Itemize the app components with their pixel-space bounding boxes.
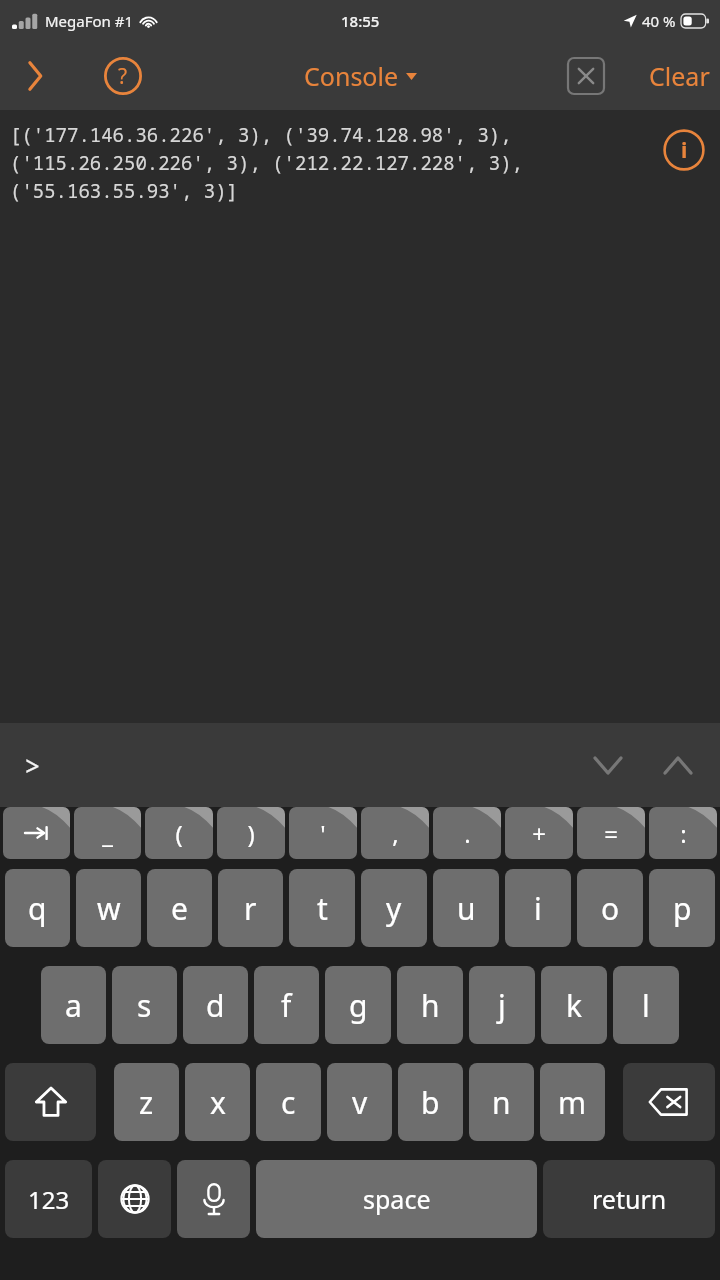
button[interactable]: k: [541, 966, 607, 1044]
button[interactable]: x: [185, 1063, 250, 1141]
button[interactable]: y: [361, 869, 427, 947]
button[interactable]: Dictation: [177, 1160, 250, 1238]
button[interactable]: v: [327, 1063, 392, 1141]
staticText: :: [680, 817, 687, 850]
button[interactable]: h: [397, 966, 463, 1044]
button[interactable]: p: [649, 869, 715, 947]
button[interactable]: w: [76, 869, 141, 947]
staticText: h: [421, 985, 440, 1026]
staticText: return: [592, 1182, 667, 1216]
button[interactable]: Change language: [98, 1160, 171, 1238]
button[interactable]: n: [469, 1063, 534, 1141]
button[interactable]: ): [217, 807, 285, 859]
staticText: d: [206, 985, 225, 1026]
staticText: x: [210, 1082, 226, 1123]
staticText: t: [317, 888, 328, 929]
button[interactable]: b: [398, 1063, 463, 1141]
staticText: w: [97, 888, 121, 929]
button[interactable]: space: [256, 1160, 537, 1238]
staticText: y: [386, 888, 402, 929]
button[interactable]: j: [469, 966, 535, 1044]
staticText: n: [492, 1082, 511, 1123]
staticText: e: [171, 888, 188, 929]
staticText: 18:55: [341, 11, 380, 31]
button[interactable]: +: [505, 807, 573, 859]
staticText: ): [247, 817, 255, 850]
button[interactable]: 123: [5, 1160, 92, 1238]
button[interactable]: Previous: [584, 741, 632, 789]
staticText: b: [421, 1082, 440, 1123]
button[interactable]: .: [433, 807, 501, 859]
button[interactable]: (: [145, 807, 213, 859]
staticText: ?: [118, 62, 128, 91]
button[interactable]: ': [289, 807, 357, 859]
staticText: v: [352, 1082, 368, 1123]
staticText: _: [102, 817, 113, 850]
staticText: i: [681, 136, 688, 165]
staticText: ': [320, 817, 326, 850]
button[interactable]: Shift: [5, 1063, 96, 1141]
staticText: u: [457, 888, 476, 929]
button[interactable]: Console: [304, 59, 417, 93]
button[interactable]: Back: [8, 49, 62, 103]
staticText: q: [28, 888, 47, 929]
staticText: Console: [304, 59, 399, 93]
button[interactable]: c: [256, 1063, 321, 1141]
staticText: [('177.146.36.226', 3), ('39.74.128.98',…: [10, 122, 524, 204]
button[interactable]: t: [289, 869, 355, 947]
button[interactable]: g: [325, 966, 391, 1044]
staticText: 40 %: [642, 11, 676, 31]
staticText: a: [65, 985, 82, 1026]
staticText: l: [642, 985, 650, 1026]
staticText: j: [498, 985, 506, 1026]
button[interactable]: Help: [96, 49, 150, 103]
staticText: r: [244, 888, 257, 929]
staticText: ,: [392, 817, 399, 850]
button[interactable]: _: [74, 807, 141, 859]
staticText: k: [566, 985, 583, 1026]
button[interactable]: f: [254, 966, 319, 1044]
staticText: .: [464, 817, 471, 850]
button[interactable]: Stop: [564, 54, 608, 98]
staticText: MegaFon #1: [45, 11, 134, 31]
staticText: i: [534, 888, 542, 929]
button[interactable]: :: [649, 807, 717, 859]
button[interactable]: Clear: [649, 59, 710, 93]
button[interactable]: r: [218, 869, 283, 947]
button[interactable]: z: [114, 1063, 179, 1141]
staticText: (: [175, 817, 183, 850]
button[interactable]: ,: [361, 807, 429, 859]
staticText: f: [281, 985, 292, 1026]
staticText: =: [604, 817, 618, 850]
button[interactable]: o: [577, 869, 643, 947]
staticText: c: [281, 1082, 296, 1123]
button[interactable]: m: [540, 1063, 605, 1141]
button[interactable]: Next: [654, 741, 702, 789]
button[interactable]: d: [183, 966, 248, 1044]
button[interactable]: a: [41, 966, 106, 1044]
button[interactable]: =: [577, 807, 645, 859]
button[interactable]: e: [147, 869, 212, 947]
staticText: +: [532, 817, 546, 850]
button[interactable]: q: [5, 869, 70, 947]
staticText: p: [673, 888, 692, 929]
staticText: m: [558, 1082, 587, 1123]
staticText: 123: [28, 1183, 70, 1216]
staticText: g: [349, 985, 368, 1026]
button[interactable]: i: [505, 869, 571, 947]
button[interactable]: l: [613, 966, 679, 1044]
staticText: Clear: [649, 59, 710, 93]
button[interactable]: return: [543, 1160, 715, 1238]
button[interactable]: Backspace: [623, 1063, 715, 1141]
button[interactable]: [3, 807, 70, 859]
button[interactable]: Info: [662, 128, 706, 172]
staticText: o: [601, 888, 620, 929]
button[interactable]: s: [112, 966, 177, 1044]
staticText: >: [24, 746, 41, 784]
staticText: space: [363, 1182, 431, 1216]
button[interactable]: u: [433, 869, 499, 947]
staticText: s: [137, 985, 152, 1026]
staticText: z: [139, 1082, 154, 1123]
